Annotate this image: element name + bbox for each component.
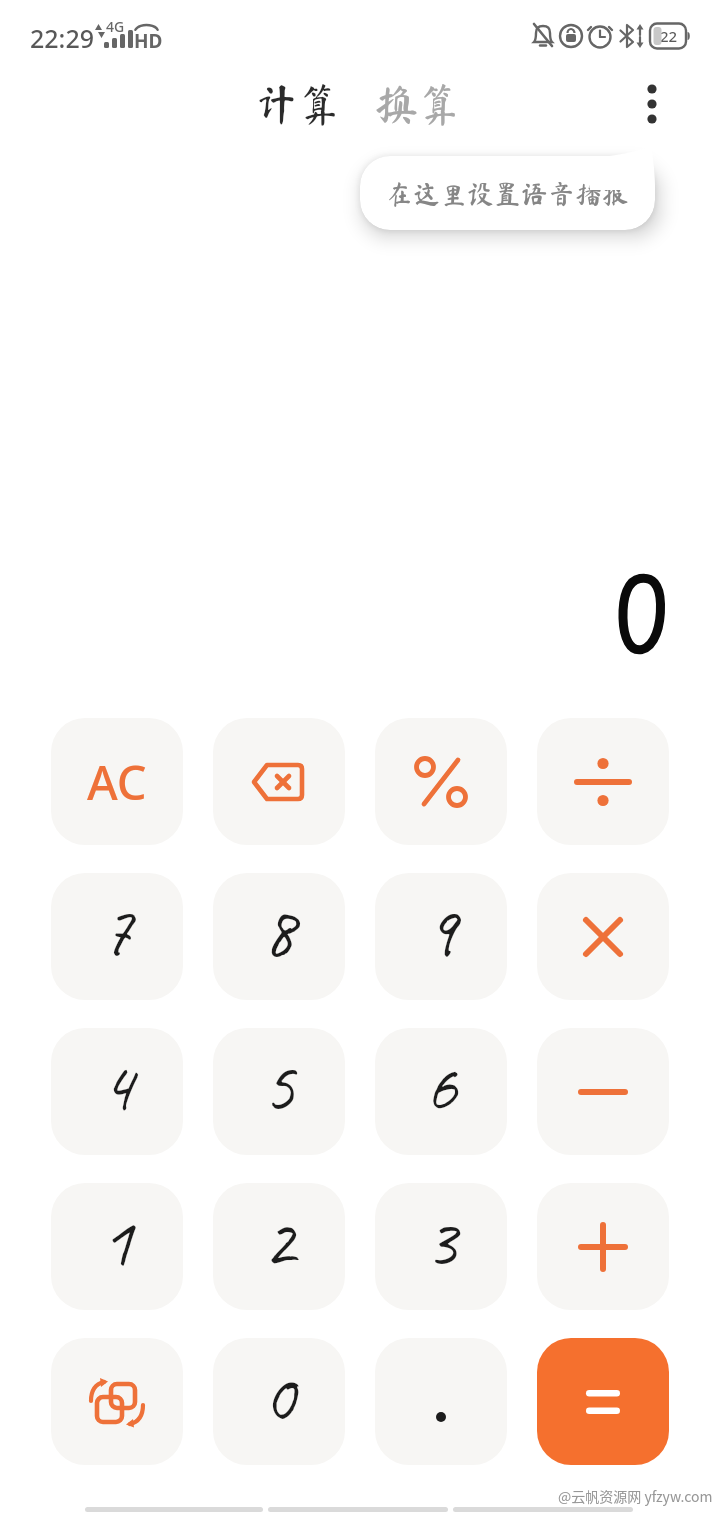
button[interactable]: 9 (375, 873, 507, 1000)
button[interactable]: 在这里设置语音播报 (360, 156, 655, 230)
staticText: 在这里设置语音播报 (386, 180, 629, 207)
button[interactable]: 0 (213, 1338, 345, 1465)
staticText: 换算 (375, 82, 461, 125)
staticText: 4 (101, 1043, 133, 1131)
button[interactable]: 3 (375, 1183, 507, 1310)
button[interactable] (213, 718, 345, 845)
button[interactable] (634, 78, 670, 132)
button[interactable] (537, 1183, 669, 1310)
button[interactable] (537, 873, 669, 1000)
button[interactable]: 5 (213, 1028, 345, 1155)
staticText: 9 (425, 888, 457, 976)
button[interactable]: AC (51, 718, 183, 845)
button[interactable] (375, 718, 507, 845)
button[interactable]: 2 (213, 1183, 345, 1310)
staticText: HD (134, 28, 163, 54)
staticText: 0 (263, 1353, 295, 1441)
staticText: 计算 (255, 82, 341, 125)
staticText: AC (87, 750, 147, 814)
staticText: 22 (660, 26, 678, 46)
staticText: @云帆资源网 yfzyw.com (558, 1486, 713, 1506)
staticText: 2 (263, 1198, 295, 1286)
staticText: 3 (425, 1198, 457, 1286)
button[interactable]: 6 (375, 1028, 507, 1155)
button[interactable] (537, 1028, 669, 1155)
button[interactable] (537, 1338, 669, 1465)
staticText: 5 (263, 1043, 295, 1131)
staticText: 4G (106, 17, 125, 36)
button[interactable]: 7 (51, 873, 183, 1000)
button[interactable]: 4 (51, 1028, 183, 1155)
button[interactable]: 计算 (250, 74, 346, 132)
button[interactable] (51, 1338, 183, 1465)
staticText: 22:29 (30, 21, 95, 55)
staticText: 7 (101, 888, 133, 976)
button[interactable] (537, 718, 669, 845)
button[interactable]: 8 (213, 873, 345, 1000)
staticText: 1 (101, 1198, 133, 1286)
button[interactable] (375, 1338, 507, 1465)
button[interactable]: 1 (51, 1183, 183, 1310)
staticText: 6 (425, 1043, 457, 1131)
staticText: 8 (263, 888, 295, 976)
button[interactable]: 换算 (370, 74, 466, 132)
